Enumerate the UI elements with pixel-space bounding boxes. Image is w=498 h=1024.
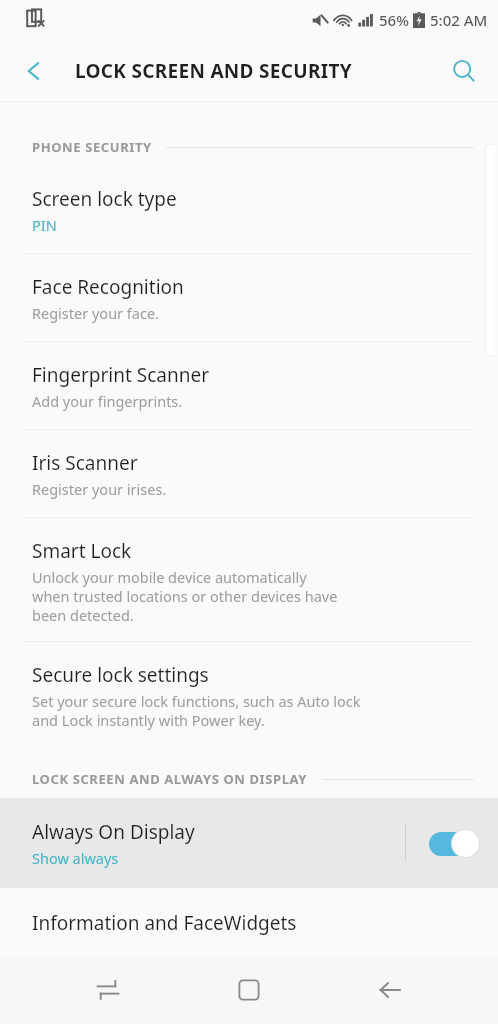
staticText: Show always [32,848,119,868]
button[interactable]: Smart Lock [0,518,498,641]
staticText: 56% [379,10,409,30]
button[interactable]: Fingerprint Scanner [0,342,498,429]
staticText: Always On Display [32,819,195,845]
staticText: Unlock your mobile device automatically … [32,567,338,625]
button[interactable]: Screen lock type [0,166,498,253]
staticText: Secure lock settings [32,662,209,688]
button[interactable]: Secure lock settings [0,642,498,746]
staticText: Iris Scanner [32,450,138,476]
staticText: LOCK SCREEN AND ALWAYS ON DISPLAY [32,770,308,788]
button[interactable]: Always On Display toggle [406,798,498,888]
button[interactable]: Iris Scanner [0,430,498,517]
staticText: Register your irises. [32,479,167,499]
staticText: 5:02 AM [430,10,488,30]
staticText: Add your fingerprints. [32,391,183,411]
button[interactable]: Home [216,957,282,1023]
staticText: Smart Lock [32,538,132,564]
staticText: Register your face. [32,303,160,323]
button[interactable]: Back [10,47,58,95]
staticText: Face Recognition [32,274,184,300]
button[interactable]: Face Recognition [0,254,498,341]
staticText: Set your secure lock functions, such as … [32,691,361,730]
staticText: Fingerprint Scanner [32,362,209,388]
button[interactable]: Always On Display [0,798,498,888]
staticText: PHONE SECURITY [32,138,152,156]
staticText: LOCK SCREEN AND SECURITY [75,58,352,84]
staticText: Information and FaceWidgets [32,910,297,936]
button[interactable]: Back [357,957,423,1023]
button[interactable]: Information and FaceWidgets [0,888,498,948]
button[interactable]: Search [440,47,488,95]
staticText: PIN [32,215,57,235]
button[interactable]: Recents [75,957,141,1023]
staticText: Screen lock type [32,186,177,212]
